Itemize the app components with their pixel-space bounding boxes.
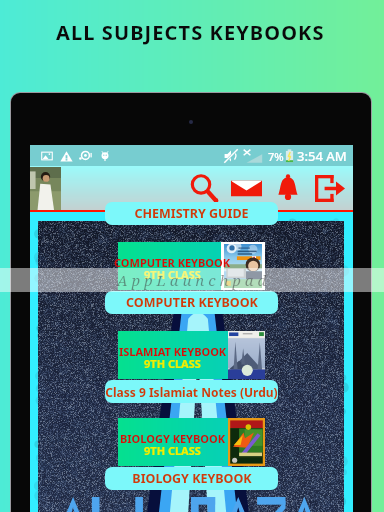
staticText: BIOLOGY KEYBOOK <box>120 431 226 446</box>
button[interactable]: COMPUTER KEYBOOK <box>118 242 265 290</box>
button[interactable]: CHEMISTRY GUIDE <box>105 202 278 225</box>
staticText: ALL SUBJECTS KEYBOOKS <box>56 19 325 46</box>
button[interactable]: Mail <box>225 167 267 209</box>
staticText: COMPUTER KEYBOOK <box>114 255 231 270</box>
button[interactable]: COMPUTER KEYBOOK <box>105 291 278 314</box>
button[interactable]: Notifications <box>267 167 309 209</box>
button[interactable]: Profile <box>30 167 61 211</box>
staticText: A p p L a u n c h p a d <box>117 270 267 290</box>
button[interactable]: BIOLOGY KEYBOOK <box>118 418 265 466</box>
staticText: 9TH CLASS <box>144 356 201 371</box>
button[interactable]: Class 9 Islamiat Notes (Urdu) <box>105 380 278 403</box>
button[interactable]: ISLAMIAT KEYBOOK <box>118 331 265 379</box>
staticText: 3:54 AM <box>297 147 347 165</box>
staticText: CHEMISTRY GUIDE <box>134 205 249 222</box>
staticText: 9TH CLASS <box>144 267 201 282</box>
staticText: Class 9 Islamiat Notes (Urdu) <box>105 384 278 400</box>
staticText: 7% <box>268 149 284 164</box>
button[interactable]: Search <box>183 167 225 209</box>
staticText: BIOLOGY KEYBOOK <box>132 470 252 487</box>
staticText: COMPUTER KEYBOOK <box>126 294 258 311</box>
button[interactable]: Exit <box>309 167 351 209</box>
staticText: ISLAMIAT KEYBOOK <box>119 344 227 359</box>
staticText: 9TH CLASS <box>144 443 201 458</box>
button[interactable]: BIOLOGY KEYBOOK <box>105 467 278 490</box>
